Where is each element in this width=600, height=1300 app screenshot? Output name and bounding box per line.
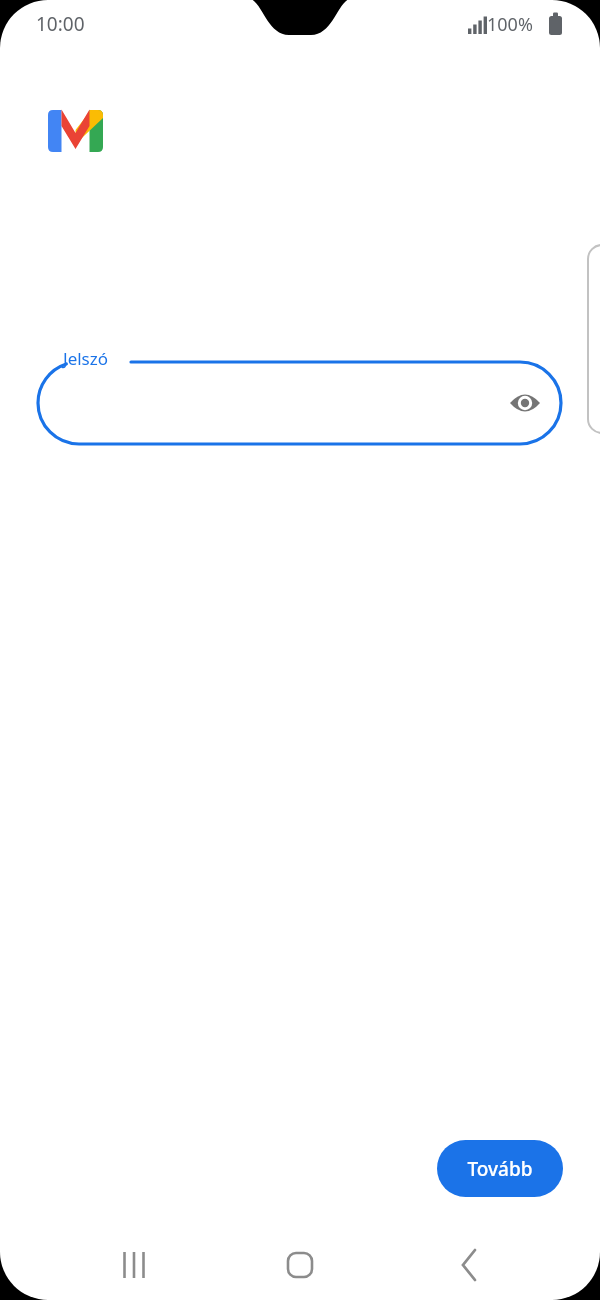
button[interactable]: Recent apps: [102, 1238, 166, 1292]
button[interactable]: Tovább: [437, 1140, 563, 1197]
staticText: Tovább: [467, 1156, 533, 1182]
button[interactable]: [38, 362, 561, 444]
button[interactable]: Home: [270, 1238, 330, 1292]
staticText: 10:00: [36, 11, 85, 37]
staticText: Jelszó: [63, 347, 109, 370]
button[interactable]: Jelszó megjelenítése: [501, 379, 549, 427]
staticText: 100%: [487, 12, 533, 37]
button[interactable]: Back: [440, 1238, 500, 1292]
